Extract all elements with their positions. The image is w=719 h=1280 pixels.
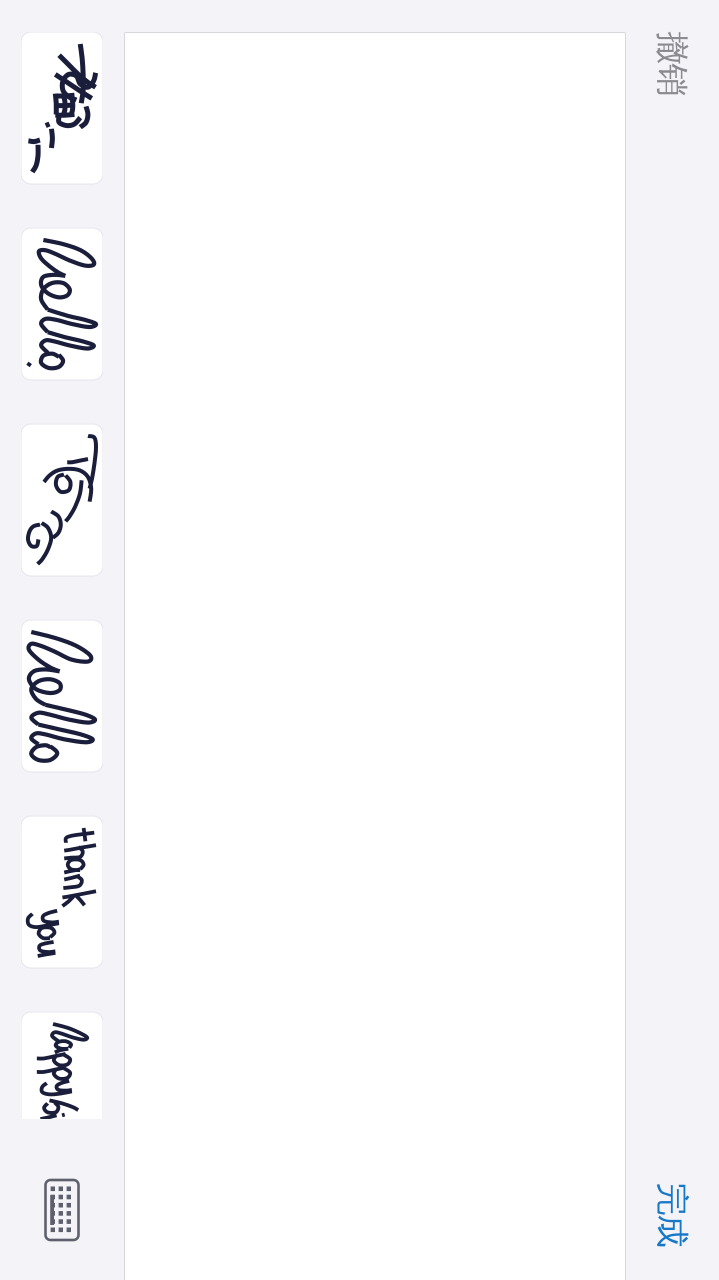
staticText: 完: [655, 1178, 688, 1219]
staticText: 撤: [655, 27, 688, 68]
button[interactable]: Done: [643, 1167, 701, 1263]
button[interactable]: Signature 1: [21, 32, 103, 184]
button[interactable]: Signature hello: [21, 228, 103, 380]
button[interactable]: Keyboard: [38, 1174, 86, 1246]
button[interactable]: Signature hello: [21, 620, 103, 772]
button[interactable]: Signature thank you: [21, 816, 103, 968]
staticText: 成: [655, 1210, 688, 1251]
staticText: 销: [655, 59, 688, 100]
button[interactable]: Undo: [643, 16, 701, 112]
button[interactable]: Signature happy birthday: [21, 1012, 103, 1164]
button[interactable]: Signature Hello: [21, 424, 103, 576]
